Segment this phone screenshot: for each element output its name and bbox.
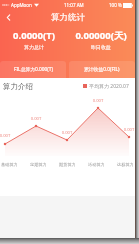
- staticText: 0.0000(T): [13, 29, 55, 42]
- staticText: 昨日收益: [91, 44, 111, 50]
- staticText: 基础算力: [1, 162, 18, 167]
- staticText: FIL总算力0.000(T): [14, 66, 53, 73]
- staticText: 0.00000(天): [75, 29, 127, 42]
- staticText: 算力统计: [51, 12, 85, 23]
- staticText: 0.00T: [58, 130, 76, 136]
- staticText: 达标算力: [117, 162, 134, 167]
- staticText: 0.00T: [0, 133, 14, 139]
- staticText: 平均算力 2020.07: [89, 83, 129, 90]
- staticText: 100 %: [109, 2, 122, 8]
- staticText: 11:07 AM: [64, 2, 84, 8]
- button[interactable]: 累计收益0.0(FIL): [69, 61, 135, 78]
- staticText: AppMoon: [11, 2, 32, 8]
- staticText: 活动算力: [88, 162, 105, 167]
- staticText: 期货算力: [59, 162, 76, 167]
- button[interactable]: FIL总算力0.000(T): [0, 61, 66, 78]
- button[interactable]: Back: [0, 10, 16, 24]
- staticText: 算力介绍: [3, 82, 33, 91]
- staticText: 0.00T: [27, 116, 45, 122]
- staticText: 定期算力: [30, 162, 47, 167]
- staticText: 累计收益0.0(FIL): [84, 66, 120, 73]
- staticText: 0.00T: [89, 98, 107, 104]
- staticText: 0.00T: [120, 127, 138, 133]
- staticText: 算力总计: [24, 44, 44, 50]
